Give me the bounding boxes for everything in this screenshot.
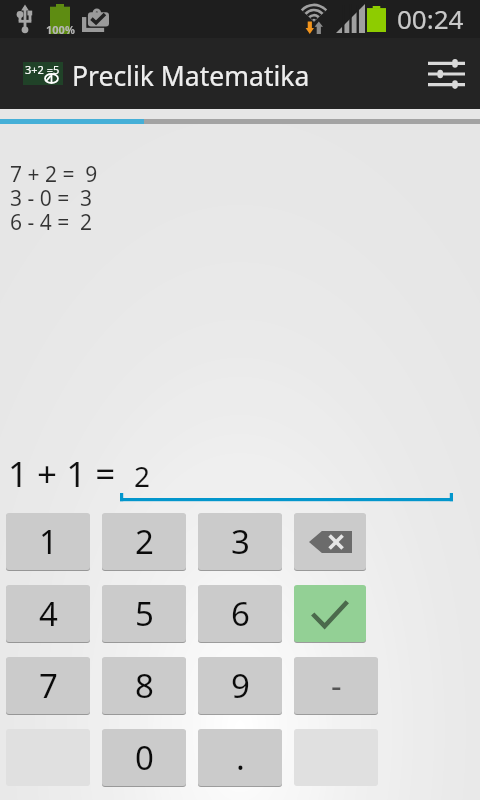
staticText: 5 — [135, 591, 154, 636]
staticText: 3 - 0 = 3 — [10, 184, 93, 213]
staticText: 100% — [46, 22, 75, 37]
button[interactable]: - — [294, 657, 378, 714]
button[interactable]: Confirm — [294, 585, 366, 642]
button[interactable]: 4 — [6, 585, 90, 642]
button[interactable]: 3 — [198, 513, 282, 570]
staticText: Preclik Matematika — [72, 58, 310, 94]
other: Backspace — [309, 531, 352, 553]
staticText: 6 - 4 = 2 — [10, 208, 93, 237]
button[interactable]: 8 — [102, 657, 186, 714]
staticText: 6 — [231, 591, 250, 636]
staticText: 9 — [231, 663, 250, 708]
staticText: 00:24 — [397, 1, 464, 36]
staticText: 2 — [134, 457, 151, 495]
button[interactable]: 7 — [6, 657, 90, 714]
button[interactable]: 5 — [102, 585, 186, 642]
button[interactable]: 6 — [198, 585, 282, 642]
staticText: 8 — [135, 663, 154, 708]
button[interactable]: 1 — [6, 513, 90, 570]
button[interactable]: 0 — [102, 729, 186, 786]
button[interactable]: Settings — [412, 38, 480, 109]
button[interactable]: 9 — [198, 657, 282, 714]
staticText: 2 — [135, 519, 154, 564]
button[interactable]: 2 — [102, 513, 186, 570]
staticText: 1 + 1 = — [8, 450, 116, 498]
staticText: 4 — [39, 591, 58, 636]
staticText: - — [331, 663, 342, 708]
staticText: 3+2 =5 — [25, 62, 60, 77]
staticText: 0 — [135, 735, 154, 780]
other: Confirm — [312, 601, 348, 627]
button[interactable]: . — [198, 729, 282, 786]
button[interactable]: Backspace — [294, 513, 366, 570]
staticText: 7 — [39, 663, 58, 708]
staticText: 7 + 2 = 9 — [10, 160, 98, 189]
staticText: . — [236, 735, 245, 780]
staticText: 1 — [39, 519, 58, 564]
staticText: 3 — [231, 519, 250, 564]
